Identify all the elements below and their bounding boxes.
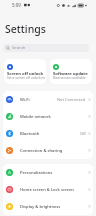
staticText: New version available bbox=[53, 76, 86, 80]
button[interactable]: Wi-Fi bbox=[3, 91, 93, 108]
staticText: Search bbox=[12, 45, 26, 51]
button[interactable]: Bluetooth bbox=[3, 125, 93, 142]
button[interactable]: Display & brightness bbox=[3, 198, 93, 215]
staticText: Wi-Fi bbox=[20, 97, 30, 103]
button[interactable]: Search bbox=[3, 44, 89, 52]
button[interactable]: Screen off unlock bbox=[4, 59, 46, 84]
staticText: Mobile network bbox=[20, 114, 51, 120]
staticText: Settings bbox=[5, 22, 46, 36]
button[interactable]: Home screen & Lock screen bbox=[3, 181, 93, 198]
staticText: Connection & sharing bbox=[20, 148, 63, 154]
staticText: Display & brightness bbox=[20, 204, 61, 210]
staticText: Screen off unlock bbox=[7, 71, 44, 77]
button[interactable]: Connection & sharing bbox=[3, 142, 93, 159]
staticText: Personalizations bbox=[20, 170, 53, 176]
staticText: Bluetooth bbox=[20, 131, 40, 137]
staticText: Not Connected bbox=[57, 97, 86, 102]
staticText: 5:09 bbox=[12, 2, 21, 8]
staticText: Home screen & Lock screen bbox=[20, 187, 74, 193]
staticText: Off bbox=[80, 131, 86, 136]
staticText: Software update bbox=[53, 71, 88, 77]
button[interactable]: Mobile network bbox=[3, 108, 93, 125]
button[interactable]: Personalizations bbox=[3, 164, 93, 181]
staticText: Set a screen off unlock method bbox=[7, 76, 45, 80]
button[interactable]: Software update bbox=[50, 59, 92, 84]
